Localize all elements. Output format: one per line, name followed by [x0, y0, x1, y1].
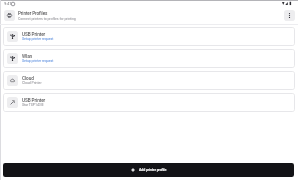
button[interactable]: USB Printer	[3, 93, 295, 112]
staticText: Connect printers to profiles for printin…	[18, 17, 76, 21]
button[interactable]: Cloud	[3, 71, 295, 90]
button[interactable]: USB Printer	[3, 27, 295, 46]
button[interactable]: Wlan	[3, 49, 295, 68]
staticText: Wlan	[22, 54, 33, 60]
staticText: Cloud Printer	[22, 81, 42, 85]
button[interactable]: More options	[284, 10, 295, 21]
staticText: Star TSP143III	[22, 103, 44, 107]
staticText: Setup printer request	[22, 37, 54, 41]
staticText: Printer Profiles	[18, 11, 48, 16]
staticText: Cloud	[22, 76, 34, 82]
button[interactable]: Add printer profile	[3, 163, 294, 177]
staticText: 9:41	[4, 1, 12, 6]
staticText: USB Printer	[22, 98, 46, 104]
staticText: Setup printer request	[22, 59, 54, 63]
staticText: Add printer profile	[139, 168, 167, 172]
staticText: USB Printer	[22, 32, 46, 38]
